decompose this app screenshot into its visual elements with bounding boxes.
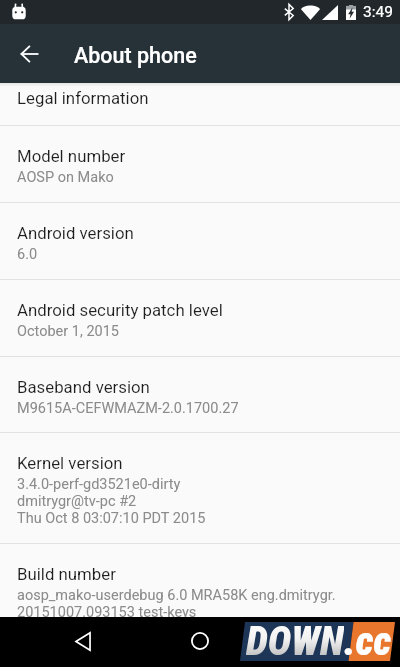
staticText: Android version <box>17 223 134 243</box>
staticText: aosp_mako-userdebug 6.0 MRA58K eng.dmitr… <box>17 587 336 604</box>
button[interactable]: Navigate up <box>6 30 54 78</box>
staticText: Thu Oct 8 03:07:10 PDT 2015 <box>17 510 206 527</box>
staticText: Baseband version <box>17 377 150 397</box>
staticText: Android security patch level <box>17 300 223 320</box>
staticText: Build number <box>17 564 116 584</box>
staticText: dmitrygr@tv-pc #2 <box>17 493 137 510</box>
staticText: 20151007.093153 test-keys <box>17 604 197 621</box>
staticText: Legal information <box>17 88 149 108</box>
staticText: 6.0 <box>17 246 38 263</box>
staticText: .cc <box>344 618 392 657</box>
staticText: DOWN <box>246 618 344 657</box>
staticText: AOSP on Mako <box>17 169 114 186</box>
staticText: Kernel version <box>17 453 123 473</box>
staticText: About phone <box>74 43 197 68</box>
button[interactable]: Legal information <box>0 83 400 125</box>
button[interactable]: Back <box>60 618 106 664</box>
button[interactable]: Build number <box>0 544 400 617</box>
staticText: Model number <box>17 146 126 166</box>
button[interactable]: Android security patch level <box>0 280 400 356</box>
button[interactable]: Home <box>177 618 223 664</box>
staticText: 3:49 <box>363 3 393 21</box>
button[interactable]: Baseband version <box>0 357 400 432</box>
button[interactable]: Kernel version <box>0 433 400 543</box>
staticText: 3.4.0-perf-gd3521e0-dirty <box>17 476 181 493</box>
staticText: M9615A-CEFWMAZM-2.0.1700.27 <box>17 400 239 417</box>
staticText: October 1, 2015 <box>17 323 119 340</box>
button[interactable]: Android version <box>0 203 400 279</box>
button[interactable]: Model number <box>0 126 400 202</box>
